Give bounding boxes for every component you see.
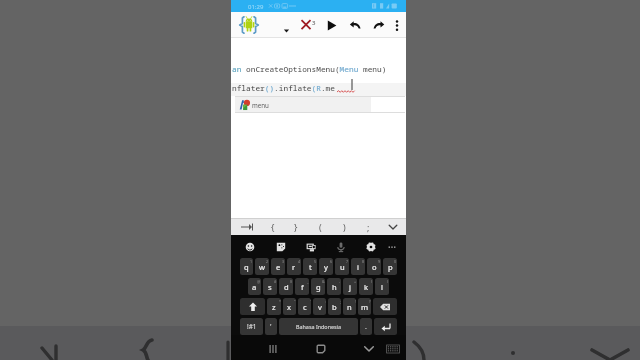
button[interactable]: l [375, 278, 389, 295]
staticText: 3 [312, 19, 316, 27]
button[interactable]: . [360, 318, 372, 335]
button[interactable]: Settings [360, 235, 382, 254]
staticText: " [294, 299, 296, 304]
button[interactable]: Voice input [330, 235, 352, 254]
staticText: 2 [266, 259, 269, 264]
button[interactable]: e [271, 258, 285, 275]
staticText: _ [307, 279, 309, 284]
button[interactable]: Hide keyboard [357, 338, 381, 359]
button[interactable]: t [303, 258, 317, 275]
button[interactable]: Errors [294, 13, 318, 37]
staticText: q [244, 262, 249, 272]
button[interactable]: Backspace [373, 298, 397, 315]
button[interactable]: Emoji [239, 235, 261, 254]
button[interactable]: n [343, 298, 356, 315]
button[interactable]: Bahasa Indonesia [279, 318, 358, 335]
button[interactable]: k [359, 278, 373, 295]
button[interactable]: !#1 [240, 318, 263, 335]
staticText: d [284, 282, 289, 292]
staticText: @ [257, 279, 261, 284]
button[interactable]: b [328, 298, 341, 315]
button[interactable]: d [279, 278, 293, 295]
button[interactable]: u [335, 258, 349, 275]
button[interactable]: j [343, 278, 357, 295]
button[interactable]: { [261, 218, 284, 235]
button[interactable]: y [319, 258, 333, 275]
staticText: p [388, 262, 393, 272]
staticText: f [301, 282, 304, 292]
button[interactable]: Project [277, 13, 297, 37]
button[interactable]: More options [384, 14, 408, 38]
staticText: Bahasa Indonesia [296, 323, 341, 330]
button[interactable]: menu [235, 97, 405, 113]
button[interactable]: Home [309, 338, 333, 359]
staticText: 4 [298, 259, 301, 264]
button[interactable]: w [255, 258, 269, 275]
staticText: 1 [250, 259, 253, 264]
staticText: ) [387, 279, 389, 284]
staticText: # [274, 279, 277, 284]
staticText: . [365, 322, 367, 332]
button[interactable]: c [298, 298, 311, 315]
button[interactable]: AIDE menu [237, 13, 261, 37]
staticText: c [303, 302, 307, 312]
button[interactable]: Shift [240, 298, 265, 315]
staticText: an onCreateOptionsMenu(Menu menu) [232, 64, 387, 75]
staticText: ( [319, 221, 322, 233]
staticText: 6 [330, 259, 333, 264]
staticText: ' [310, 299, 311, 304]
staticText: { [271, 221, 275, 233]
button[interactable]: ) [332, 218, 356, 235]
button[interactable]: Run [320, 14, 344, 38]
staticText: i [357, 262, 359, 272]
button[interactable]: Stickers [270, 235, 292, 254]
button[interactable]: Recents [261, 338, 285, 359]
button[interactable]: ( [308, 218, 332, 235]
staticText: y [324, 262, 328, 272]
staticText: m [361, 302, 369, 312]
button[interactable]: Switch keyboard [381, 338, 405, 359]
button[interactable]: More [381, 235, 403, 254]
staticText: r [292, 262, 296, 272]
staticText: ' [270, 322, 272, 332]
button[interactable]: o [367, 258, 381, 275]
button[interactable]: a [248, 278, 261, 295]
button[interactable]: p [383, 258, 397, 275]
button[interactable]: ; [356, 218, 380, 235]
button[interactable]: v [313, 298, 326, 315]
staticText: 5 [314, 259, 317, 264]
button[interactable]: f [295, 278, 309, 295]
staticText: * [279, 299, 281, 304]
staticText: a [252, 282, 257, 292]
button[interactable]: m [358, 298, 371, 315]
button[interactable]: } [284, 218, 308, 235]
staticText: } [294, 221, 298, 233]
button[interactable]: Translate [300, 235, 322, 254]
staticText: nflater().inflate(R.me [232, 83, 335, 94]
staticText: : [325, 299, 326, 304]
staticText: ! [355, 299, 356, 304]
staticText: 9 [378, 259, 381, 264]
button[interactable]: Undo [345, 15, 369, 39]
button[interactable]: r [287, 258, 301, 275]
button[interactable]: i [351, 258, 365, 275]
staticText: ( [371, 279, 373, 284]
staticText: b [332, 302, 337, 312]
button[interactable]: g [311, 278, 325, 295]
button[interactable]: h [327, 278, 341, 295]
staticText: e [276, 262, 281, 272]
button[interactable]: z [267, 298, 281, 315]
staticText: j [349, 282, 351, 292]
button[interactable]: ' [265, 318, 277, 335]
button[interactable]: Enter [374, 318, 397, 335]
staticText: 8 [362, 259, 365, 264]
button[interactable]: Redo [369, 15, 393, 39]
button[interactable]: q [240, 258, 253, 275]
button[interactable]: x [283, 298, 296, 315]
button[interactable]: Hide [380, 218, 406, 235]
staticText: z [272, 302, 276, 312]
staticText: o [372, 262, 377, 272]
button[interactable]: Tab [231, 218, 261, 235]
button[interactable]: s [263, 278, 277, 295]
staticText: ; [367, 221, 370, 233]
